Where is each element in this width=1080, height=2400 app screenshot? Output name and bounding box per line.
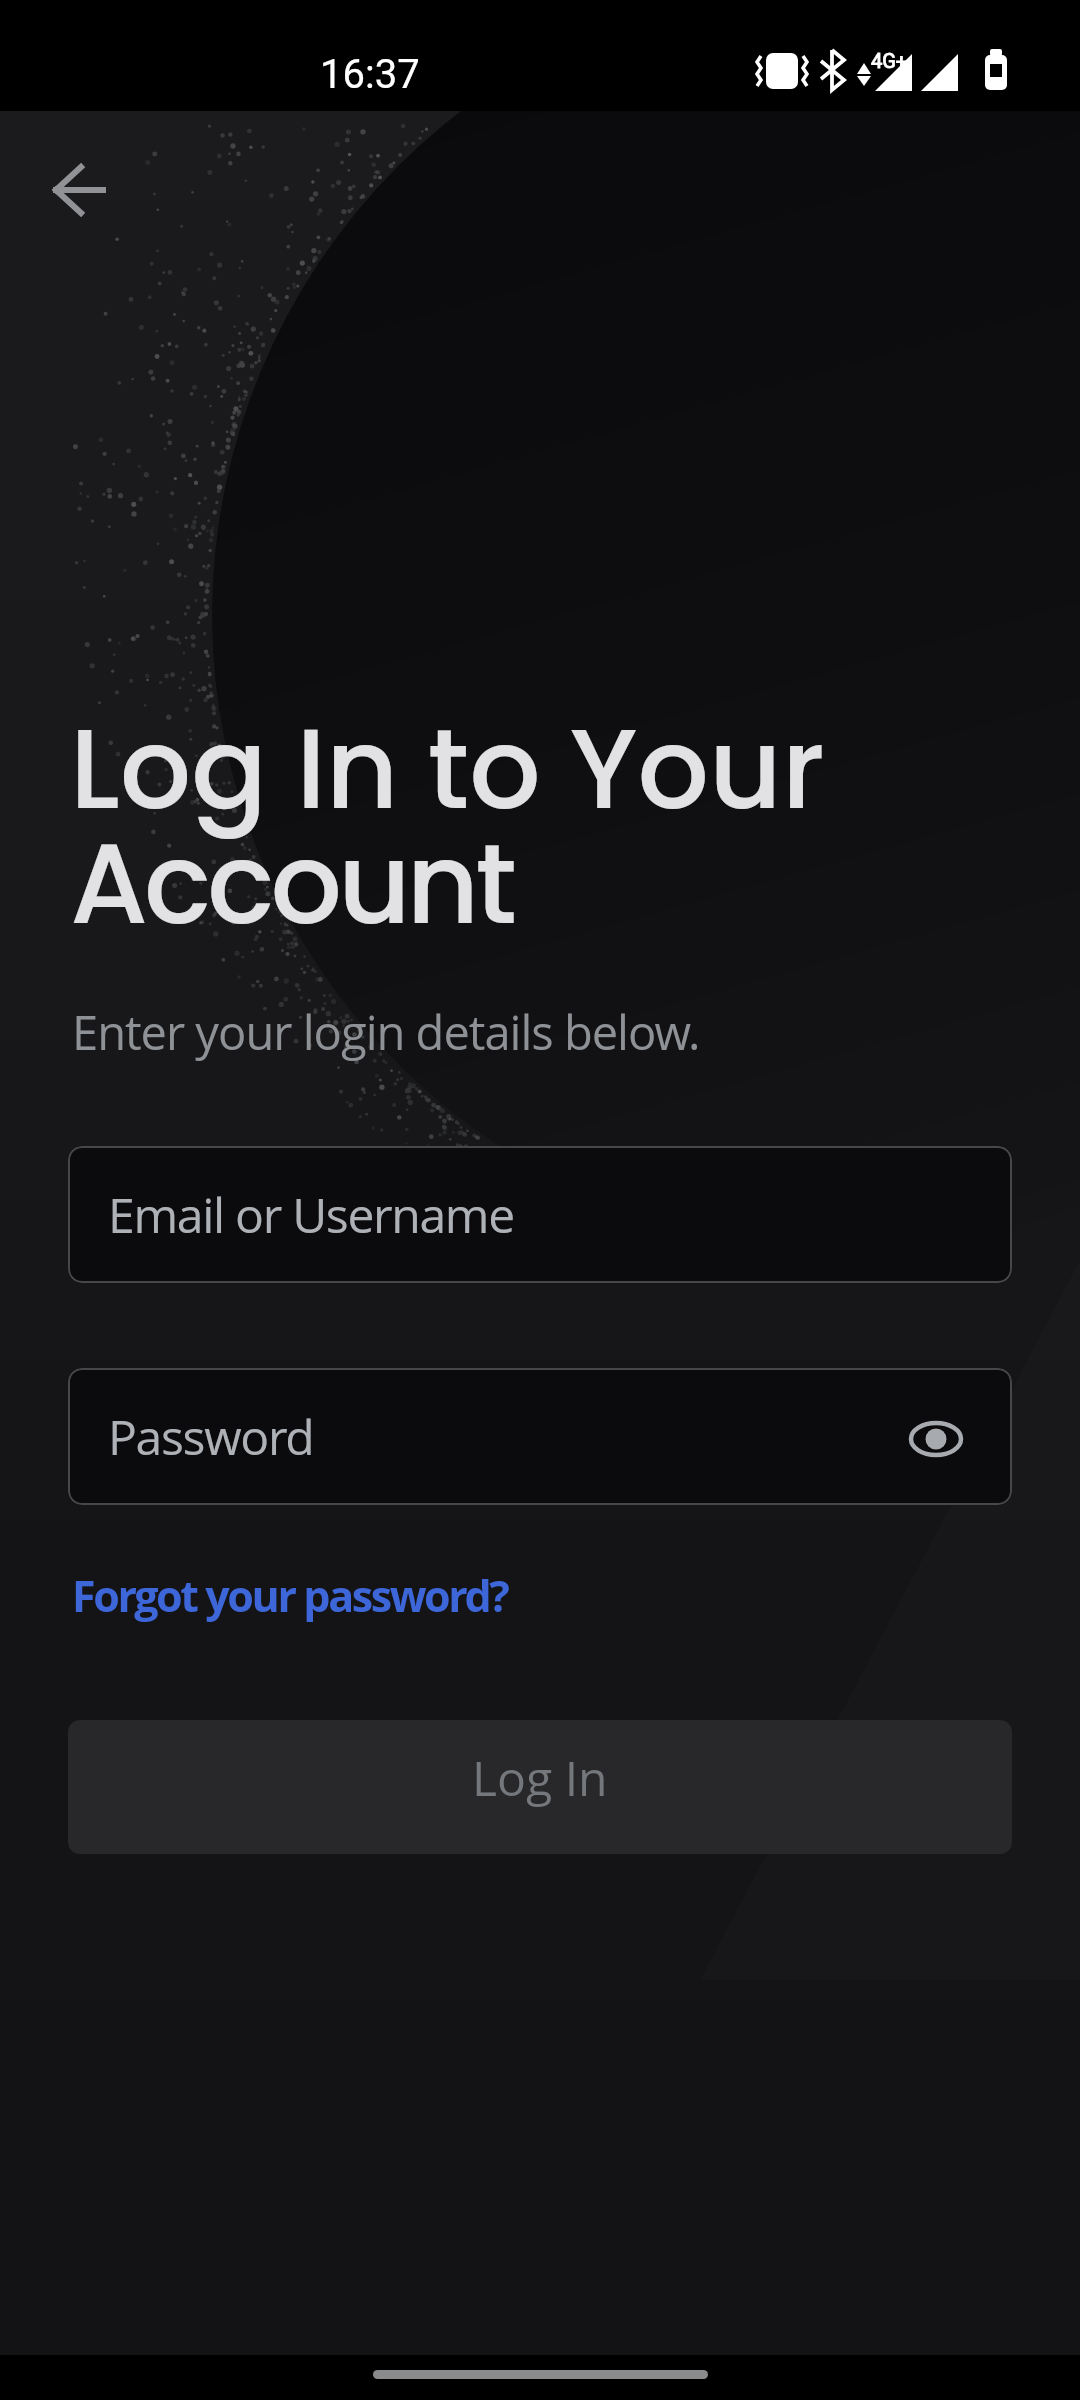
staticText: Log In [472,1745,608,1810]
button[interactable]: Forgot your password? [72,1566,508,1625]
staticText: Email or Username [108,1182,514,1247]
staticText: 4G+ [871,49,908,72]
staticText: Account [70,805,513,962]
button[interactable]: Log In [68,1720,1012,1854]
staticText: 16:37 [320,51,420,98]
button[interactable] [32,146,124,234]
staticText: Enter your login details below. [72,1000,700,1064]
staticText: Password [108,1404,314,1469]
button[interactable]: Email or Username [68,1146,1012,1283]
button[interactable]: Password [68,1368,1012,1505]
staticText: Log In to Your [70,690,825,847]
